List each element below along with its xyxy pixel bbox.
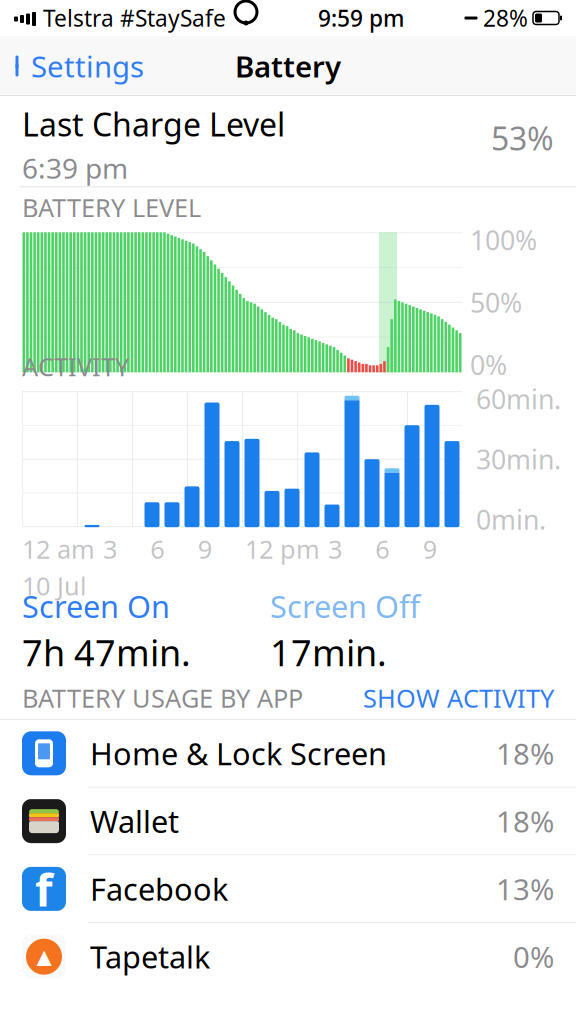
staticText: BATTERY LEVEL — [22, 191, 201, 224]
button[interactable]: Settings — [0, 38, 156, 94]
staticText: Home & Lock Screen — [90, 733, 387, 774]
staticText: 3 — [103, 532, 117, 566]
staticText: 12 am — [22, 532, 95, 566]
staticText: Facebook — [90, 868, 228, 909]
staticText: Screen Off — [270, 586, 420, 626]
staticText: 53% — [491, 117, 554, 159]
staticText: 0min. — [476, 502, 546, 537]
staticText: 50% — [470, 285, 522, 320]
staticText: Wallet — [90, 801, 179, 841]
staticText: Tapetalk — [90, 936, 210, 977]
staticText: 18% — [496, 734, 554, 773]
staticText: 10 Jul — [22, 569, 87, 602]
staticText: 6 — [375, 532, 389, 566]
staticText: 12 pm — [245, 532, 320, 566]
staticText: 6:39 pm — [22, 149, 128, 186]
staticText: 3 — [328, 532, 342, 566]
staticText: 6 — [150, 532, 164, 566]
staticText: f — [35, 859, 53, 919]
staticText: Last Charge Level — [22, 103, 285, 145]
button[interactable]: ▲ — [0, 923, 576, 990]
staticText: Screen On — [22, 586, 170, 626]
staticText: 0% — [513, 937, 554, 976]
staticText: 0% — [470, 347, 507, 382]
staticText: Battery — [235, 46, 341, 85]
staticText: BATTERY USAGE BY APP — [22, 681, 303, 715]
button[interactable]: Wallet — [0, 788, 576, 855]
staticText: 28% — [483, 3, 528, 33]
staticText: Telstra #StaySafe — [43, 3, 226, 33]
staticText: 100% — [470, 222, 537, 258]
staticText: Settings — [31, 46, 144, 85]
staticText: 60min. — [476, 381, 561, 417]
button[interactable]: Home & Lock Screen — [0, 720, 576, 788]
staticText: ▲ — [36, 945, 51, 968]
staticText: ACTIVITY — [22, 349, 129, 383]
staticText: 30min. — [476, 441, 561, 477]
staticText: 18% — [496, 802, 554, 841]
staticText: 9 — [198, 532, 212, 566]
button[interactable]: f — [0, 855, 576, 923]
staticText: 13% — [496, 869, 554, 908]
staticText: SHOW ACTIVITY — [363, 681, 554, 715]
button[interactable]: BATTERY USAGE BY APP — [0, 677, 576, 719]
staticText: 17min. — [270, 628, 387, 676]
staticText: 7h 47min. — [22, 628, 191, 676]
staticText: 9:59 pm — [318, 3, 404, 33]
staticText: 9 — [423, 532, 437, 566]
